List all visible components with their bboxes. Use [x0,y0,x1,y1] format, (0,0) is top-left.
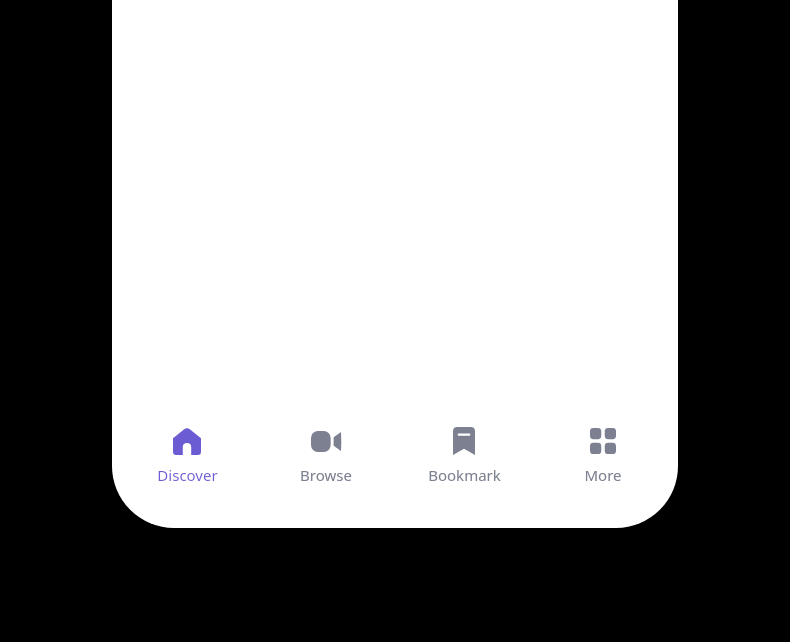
button[interactable]: Bookmark [400,410,528,485]
button[interactable]: Browse [262,410,390,485]
button[interactable]: Discover [123,410,251,485]
staticText: Bookmark [428,465,501,485]
staticText: Browse [300,465,352,485]
staticText: Discover [157,465,218,485]
staticText: More [584,465,622,485]
button[interactable]: More [539,410,667,485]
